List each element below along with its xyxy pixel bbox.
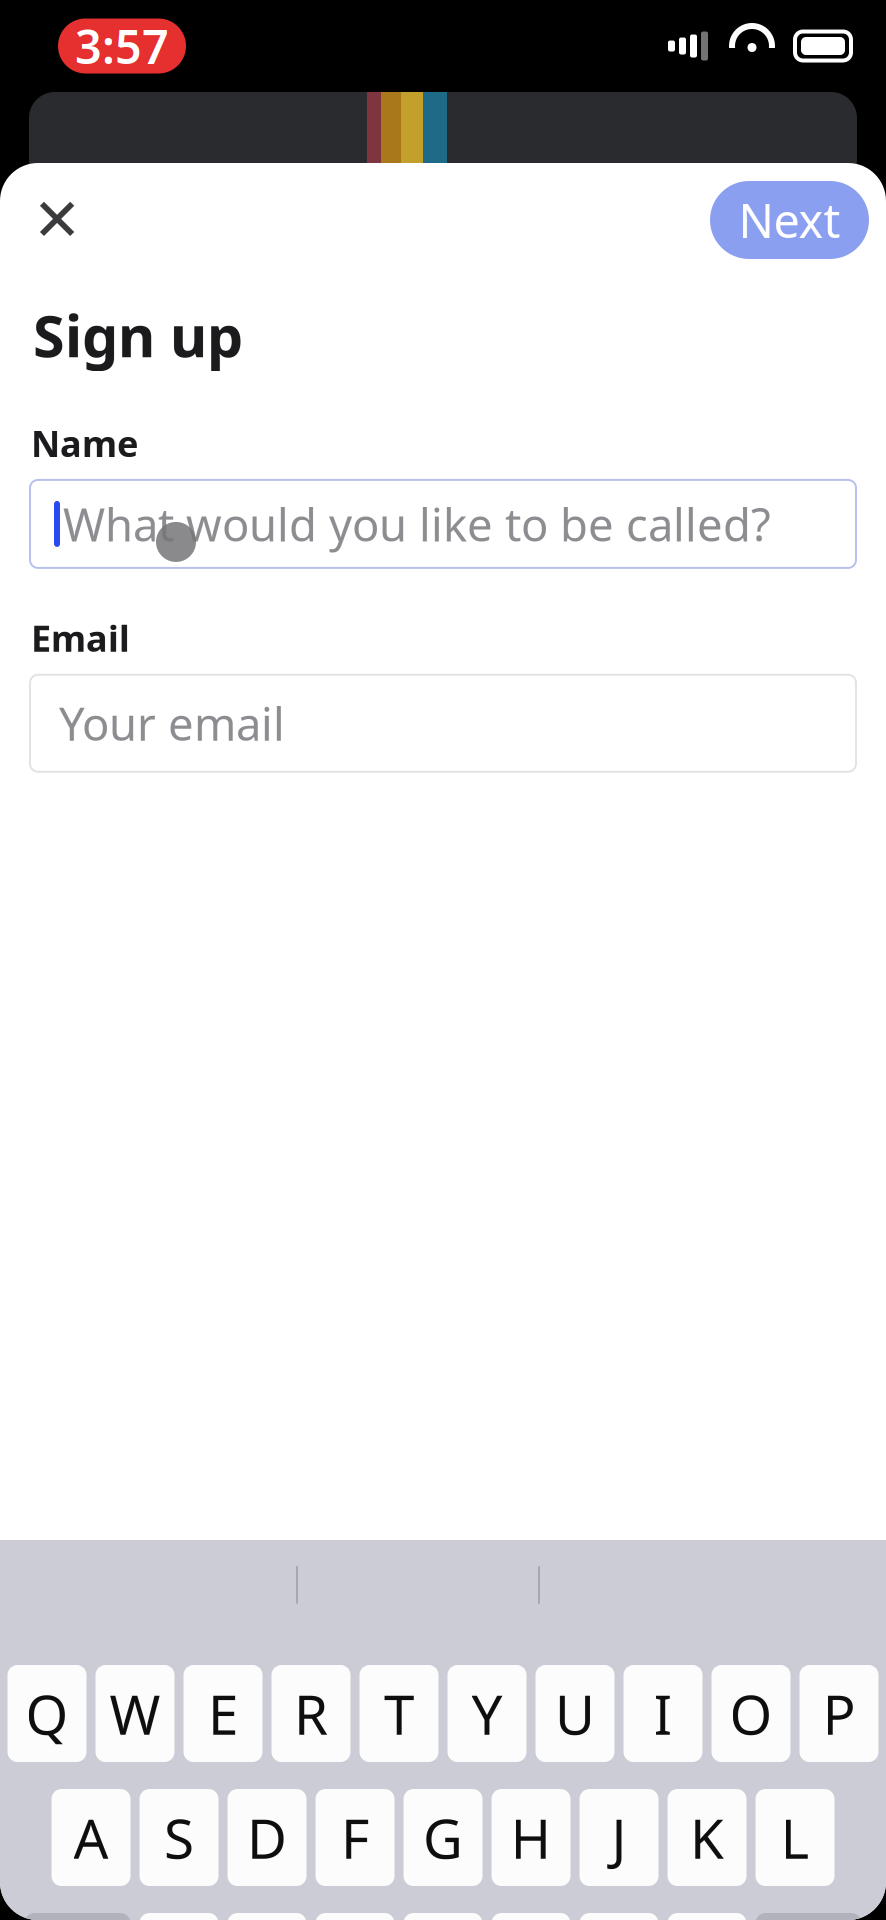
button[interactable]: D	[227, 1789, 306, 1886]
staticText: Your email	[59, 693, 285, 753]
staticText: L	[780, 1801, 809, 1874]
button[interactable]: S	[139, 1789, 218, 1886]
staticText: D	[247, 1801, 287, 1874]
staticText: H	[510, 1801, 551, 1874]
button[interactable]: H	[491, 1789, 570, 1886]
button[interactable]: U	[535, 1665, 614, 1762]
staticText: I	[653, 1677, 672, 1750]
staticText: Q	[25, 1677, 68, 1750]
staticText: 3:57	[75, 15, 169, 77]
button[interactable]: T	[359, 1665, 438, 1762]
button[interactable]: P	[799, 1665, 878, 1762]
button[interactable]: N	[579, 1913, 658, 1920]
staticText: Y	[471, 1677, 502, 1750]
button[interactable]: Shift	[24, 1913, 130, 1920]
button[interactable]: Y	[447, 1665, 526, 1762]
button[interactable]: M	[667, 1913, 746, 1920]
staticText: A	[73, 1801, 108, 1874]
staticText: P	[822, 1677, 855, 1750]
button[interactable]: Z	[139, 1913, 218, 1920]
button[interactable]: J	[579, 1789, 658, 1886]
button[interactable]: Q	[7, 1665, 86, 1762]
staticText: R	[294, 1677, 328, 1750]
button[interactable]: R	[271, 1665, 350, 1762]
button[interactable]: L	[755, 1789, 834, 1886]
staticText: U	[555, 1677, 595, 1750]
button[interactable]: C	[315, 1913, 394, 1920]
staticText: Name	[31, 419, 138, 467]
staticText: Sign up	[33, 297, 243, 373]
button[interactable]: V	[403, 1913, 482, 1920]
button[interactable]: E	[183, 1665, 262, 1762]
staticText: ✕	[32, 187, 81, 253]
button[interactable]: I	[623, 1665, 702, 1762]
staticText: K	[690, 1801, 724, 1874]
button[interactable]: Next	[710, 181, 869, 259]
staticText: What would you like to be called?	[63, 494, 771, 554]
staticText: F	[341, 1801, 369, 1874]
staticText: Email	[31, 614, 130, 662]
staticText: E	[208, 1677, 238, 1750]
button[interactable]: G	[403, 1789, 482, 1886]
staticText: S	[164, 1801, 194, 1874]
staticText: W	[109, 1677, 160, 1750]
button[interactable]: Close	[18, 181, 96, 259]
staticText: T	[384, 1677, 414, 1750]
button[interactable]: A	[51, 1789, 130, 1886]
button[interactable]: Delete	[755, 1913, 861, 1920]
button[interactable]: O	[711, 1665, 790, 1762]
button[interactable]: K	[667, 1789, 746, 1886]
button[interactable]: F	[315, 1789, 394, 1886]
button[interactable]: W	[95, 1665, 174, 1762]
staticText: O	[729, 1677, 772, 1750]
staticText: G	[423, 1801, 463, 1874]
button[interactable]: X	[227, 1913, 306, 1920]
staticText: Next	[738, 189, 840, 251]
button[interactable]: B	[491, 1913, 570, 1920]
staticText: J	[611, 1801, 626, 1874]
